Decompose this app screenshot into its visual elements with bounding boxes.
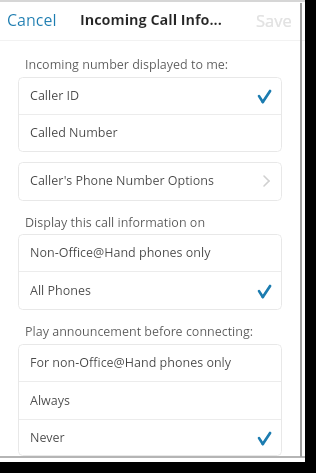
button[interactable]: Cancel	[0, 4, 65, 36]
staticText: Caller ID	[30, 87, 80, 104]
staticText: All Phones	[30, 282, 91, 299]
staticText: Cancel	[7, 9, 57, 31]
button[interactable]: For non-Office@Hand phones only	[18, 344, 282, 382]
button[interactable]: Called Number	[18, 115, 282, 152]
staticText: Never	[30, 429, 65, 446]
button[interactable]: Caller's Phone Number Options	[18, 162, 282, 200]
staticText: Always	[30, 392, 71, 409]
button[interactable]: Always	[18, 382, 282, 420]
button[interactable]: Never	[18, 420, 282, 456]
button[interactable]: Save	[248, 4, 300, 36]
staticText: Incoming number displayed to me:	[25, 56, 229, 73]
staticText: Caller's Phone Number Options	[30, 172, 214, 189]
staticText: For non-Office@Hand phones only	[30, 354, 232, 371]
button[interactable]: Caller ID	[18, 77, 282, 115]
button[interactable]: All Phones	[18, 272, 282, 310]
staticText: Display this call information on	[25, 214, 206, 231]
staticText: Incoming Call Info...	[80, 10, 222, 30]
staticText: Play announcement before connecting:	[25, 323, 254, 340]
staticText: Non-Office@Hand phones only	[30, 244, 211, 261]
staticText: Save	[256, 9, 292, 31]
button[interactable]: Non-Office@Hand phones only	[18, 234, 282, 272]
staticText: Called Number	[30, 124, 118, 141]
